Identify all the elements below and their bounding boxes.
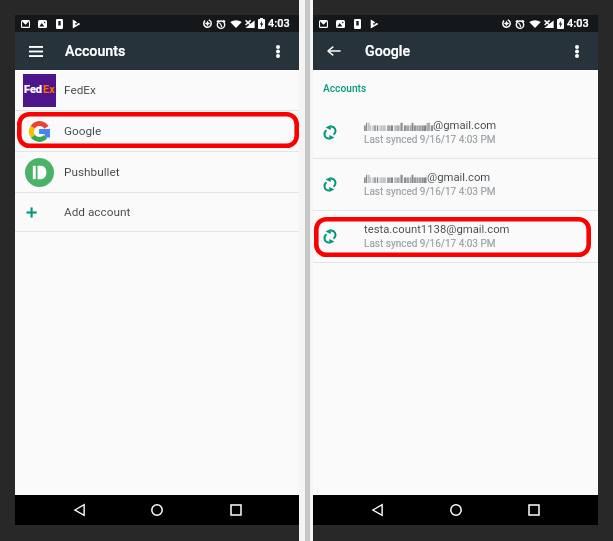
staticText: Accounts <box>323 83 367 95</box>
staticText: 4:03 <box>567 17 589 30</box>
staticText: Last synced 9/16/17 4:03 PM <box>364 238 496 250</box>
staticText: Google <box>365 43 411 60</box>
button[interactable]: @gmail.com <box>313 159 598 210</box>
staticText: Last synced 9/16/17 4:03 PM <box>364 186 496 198</box>
staticText: Last synced 9/16/17 4:03 PM <box>364 134 496 146</box>
button[interactable]: Open navigation menu <box>17 32 55 70</box>
button[interactable]: Recent apps <box>221 495 251 525</box>
staticText: @gmail.com <box>427 171 491 184</box>
staticText: 4:03 <box>268 17 290 30</box>
button[interactable]: Recent apps <box>519 495 549 525</box>
button[interactable]: Back <box>362 495 392 525</box>
button[interactable]: Add account <box>15 193 299 231</box>
button[interactable]: Back <box>64 495 94 525</box>
button[interactable]: More options <box>558 32 596 70</box>
staticText: Google <box>64 124 102 138</box>
staticText: Accounts <box>65 43 126 60</box>
staticText: @gmail.com <box>433 119 497 132</box>
staticText: testa.count1138@gmail.com <box>364 223 510 236</box>
button[interactable]: @gmail.com <box>313 107 598 158</box>
button[interactable]: Home <box>441 495 471 525</box>
staticText: Fed <box>24 83 43 96</box>
button[interactable]: Home <box>142 495 172 525</box>
staticText: Ex <box>43 83 55 96</box>
button[interactable]: Pushbullet <box>15 152 299 192</box>
button[interactable]: More options <box>259 32 297 70</box>
staticText: Add account <box>64 205 131 219</box>
button[interactable]: testa.count1138@gmail.com <box>313 211 598 262</box>
staticText: FedEx <box>64 83 96 97</box>
button[interactable]: Google <box>15 111 299 151</box>
button[interactable]: Navigate up <box>315 32 353 70</box>
staticText: Pushbullet <box>64 165 120 179</box>
button[interactable]: Fed <box>15 70 299 110</box>
